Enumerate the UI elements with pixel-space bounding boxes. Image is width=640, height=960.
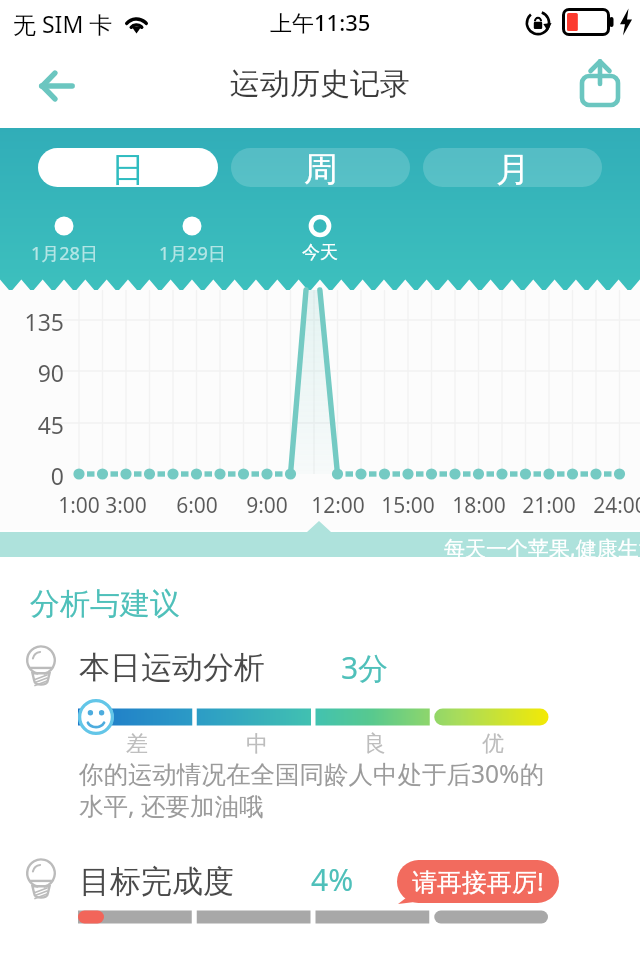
staticText: 日 xyxy=(111,148,145,187)
button[interactable]: 今天 xyxy=(256,214,384,264)
button[interactable]: 月 xyxy=(423,148,602,187)
staticText: 135 xyxy=(0,306,64,337)
button[interactable]: 请再接再厉! xyxy=(412,864,544,898)
staticText: 分析与建议 xyxy=(30,585,180,623)
staticText: 1:00 xyxy=(39,491,119,520)
staticText: 18:00 xyxy=(439,491,519,520)
staticText: 1月28日 xyxy=(31,241,98,266)
button[interactable]: 周 xyxy=(231,148,410,187)
button[interactable]: Share xyxy=(576,60,624,108)
staticText: 今天 xyxy=(302,241,338,264)
button[interactable]: Tip xyxy=(26,647,56,687)
staticText: 差 xyxy=(107,730,167,758)
other: Rotation lock xyxy=(523,8,553,38)
staticText: 无 SIM 卡 xyxy=(13,8,113,39)
staticText: 45 xyxy=(0,409,64,440)
button[interactable]: 日 xyxy=(38,148,218,187)
button[interactable]: 1月28日 xyxy=(0,214,128,266)
staticText: 优 xyxy=(463,730,523,758)
staticText: 21:00 xyxy=(509,491,589,520)
staticText: 90 xyxy=(0,357,64,388)
staticText: 中 xyxy=(227,730,287,758)
staticText: 良 xyxy=(345,730,405,758)
staticText: 0 xyxy=(0,460,64,491)
staticText: 每天一个苹果,健康生活三十 xyxy=(444,534,640,563)
staticText: 上午11:35 xyxy=(270,7,371,37)
staticText: 15:00 xyxy=(368,491,448,520)
staticText: 1月29日 xyxy=(159,241,226,266)
staticText: 24:00 xyxy=(580,491,640,520)
staticText: 运动历史记录 xyxy=(230,65,410,103)
staticText: 本日运动分析 xyxy=(79,648,265,687)
button[interactable]: Back xyxy=(32,62,80,110)
button[interactable]: 1月29日 xyxy=(128,214,256,266)
staticText: 3分 xyxy=(341,647,389,688)
staticText: 3:00 xyxy=(86,491,166,520)
staticText: 9:00 xyxy=(227,491,307,520)
staticText: 月 xyxy=(496,148,530,187)
staticText: 请再接再厉! xyxy=(412,864,544,898)
staticText: 12:00 xyxy=(298,491,378,520)
button[interactable]: Tip xyxy=(26,860,56,900)
staticText: 你的运动情况在全国同龄人中处于后30%的 水平, 还要加油哦 xyxy=(79,757,544,823)
staticText: 4% xyxy=(311,859,354,900)
staticText: 目标完成度 xyxy=(79,862,234,901)
staticText: 周 xyxy=(304,148,338,187)
staticText: 6:00 xyxy=(157,491,237,520)
